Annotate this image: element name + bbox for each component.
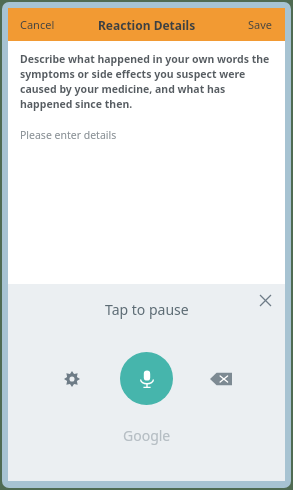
button[interactable]: Watch List — [120, 437, 175, 481]
staticText: Reaction Details — [98, 17, 196, 33]
button[interactable]: Save — [236, 11, 285, 38]
button[interactable]: Microphone, tap to pause — [120, 352, 173, 405]
button[interactable]: Settings — [52, 359, 92, 399]
button[interactable]: Backspace — [201, 359, 241, 399]
staticText: Please enter details — [20, 128, 117, 142]
staticText: Cancel — [20, 17, 55, 32]
staticText: Tap to pause — [105, 300, 189, 319]
button[interactable]: Close — [253, 288, 277, 312]
staticText: Google — [123, 426, 171, 445]
staticText: Describe what happened in your own words… — [20, 52, 273, 111]
button[interactable]: Cancel — [8, 11, 67, 38]
button[interactable]: Please enter details — [20, 128, 273, 142]
staticText: Save — [248, 17, 273, 32]
